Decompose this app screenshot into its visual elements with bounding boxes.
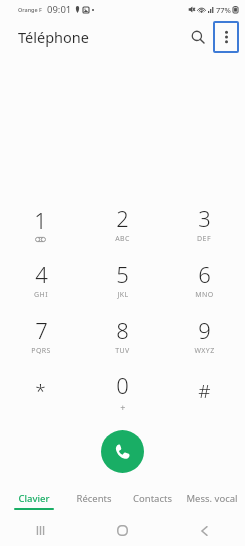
button[interactable]: 2	[81, 197, 163, 253]
button[interactable]: 4	[0, 253, 81, 309]
staticText: 77%	[216, 5, 231, 15]
staticText: +	[120, 401, 126, 413]
button[interactable]: Contacts	[123, 489, 182, 515]
button[interactable]: 8	[81, 309, 163, 365]
staticText: 9	[198, 315, 211, 345]
staticText: *	[35, 378, 46, 404]
staticText: 4	[35, 259, 48, 289]
button[interactable]: 5	[81, 253, 163, 309]
staticText: 8	[116, 315, 129, 345]
button[interactable]: 3	[163, 197, 245, 253]
staticText: PQRS	[31, 346, 51, 356]
button[interactable]: Mess. vocal	[182, 489, 241, 515]
button[interactable]: Récents	[64, 489, 123, 515]
staticText: 09:01	[47, 3, 72, 16]
button[interactable]: Accueil	[81, 515, 163, 546]
staticText: DEF	[197, 234, 211, 244]
staticText: 6	[198, 259, 211, 289]
staticText: WXYZ	[194, 346, 215, 356]
staticText: 2	[116, 203, 129, 233]
staticText: #	[198, 378, 211, 404]
staticText: MNO	[195, 290, 214, 300]
staticText: JKL	[117, 290, 129, 300]
button[interactable]: 1	[0, 197, 81, 253]
staticText: Récents	[76, 492, 112, 505]
staticText: Téléphone	[18, 27, 89, 47]
button[interactable]: Plus d'options	[213, 21, 239, 53]
staticText: 1	[34, 205, 47, 235]
staticText: Clavier	[18, 492, 50, 505]
staticText: ABC	[115, 234, 130, 244]
button[interactable]: 6	[163, 253, 245, 309]
staticText: Contacts	[133, 492, 172, 505]
button[interactable]: Applications récentes	[0, 515, 81, 546]
button[interactable]: 9	[163, 309, 245, 365]
staticText: Mess. vocal	[186, 492, 238, 505]
button[interactable]: 0	[81, 365, 163, 421]
staticText: GHI	[34, 290, 48, 300]
staticText: TUV	[115, 346, 130, 356]
staticText: 7	[35, 315, 48, 345]
staticText: 3	[198, 203, 211, 233]
button[interactable]: Rechercher	[183, 22, 213, 52]
button[interactable]: *	[0, 365, 81, 421]
staticText: Orange F	[18, 6, 43, 13]
staticText: 5	[116, 259, 129, 289]
button[interactable]: #	[163, 365, 245, 421]
button[interactable]: Retour	[163, 515, 245, 546]
button[interactable]: Clavier	[4, 489, 64, 515]
button[interactable]: 7	[0, 309, 81, 365]
button[interactable]: Appeler	[101, 430, 144, 473]
staticText: 0	[116, 370, 129, 400]
